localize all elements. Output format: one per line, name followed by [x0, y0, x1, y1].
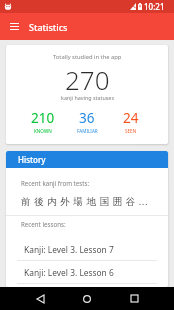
staticText: 210 — [31, 109, 55, 127]
staticText: kanji having statuses — [61, 94, 114, 101]
button[interactable]: 210 — [21, 109, 65, 134]
button[interactable]: Home — [70, 287, 104, 310]
staticText: 270 — [65, 62, 110, 97]
staticText: Recent lessons: — [21, 220, 66, 228]
staticText: Totally studied in the app — [53, 53, 122, 61]
staticText: Kanji: Level 3. Lesson 6 — [24, 267, 114, 278]
staticText: 36 — [79, 109, 95, 127]
button[interactable]: Recents — [117, 287, 151, 310]
button[interactable]: Kanji: Level 3. Lesson 6 — [6, 261, 168, 284]
button[interactable]: Menu — [0, 13, 29, 40]
staticText: Recent kanji from tests: — [21, 179, 90, 187]
staticText: 前 後 内 外 場 地 国 囲 谷 ... — [21, 195, 149, 208]
staticText: FAMILIAR — [77, 128, 98, 134]
button[interactable]: Back — [23, 287, 57, 310]
staticText: KNOWN — [34, 128, 52, 134]
staticText: History — [18, 154, 46, 165]
staticText: Kanji: Level 3. Lesson 7 — [24, 244, 114, 255]
button[interactable]: Kanji: Level 3. Lesson 7 — [6, 238, 168, 261]
staticText: 10:21 — [144, 1, 165, 12]
staticText: 24 — [123, 109, 139, 127]
staticText: Statistics — [29, 21, 68, 33]
button[interactable]: 36 — [65, 109, 109, 134]
button[interactable]: 24 — [109, 109, 153, 134]
staticText: SEEN — [125, 128, 137, 134]
